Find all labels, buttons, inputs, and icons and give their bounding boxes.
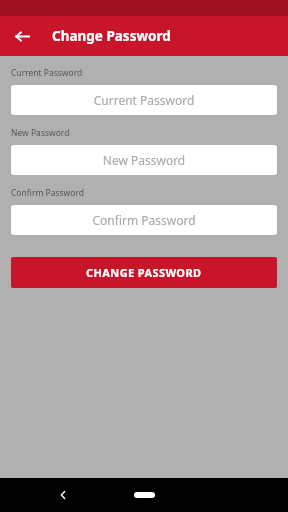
button[interactable]: Back [50,482,76,508]
button[interactable]: Current Password [11,85,277,115]
staticText: Current Password [11,67,83,79]
button[interactable]: CHANGE PASSWORD [11,257,277,288]
staticText: Confirm Password [11,212,277,228]
button[interactable]: New Password [11,145,277,175]
button[interactable]: Home [124,485,164,505]
staticText: Change Password [52,27,171,45]
staticText: Confirm Password [11,187,84,199]
staticText: Current Password [11,92,277,108]
button[interactable]: Back [9,23,35,49]
staticText: CHANGE PASSWORD [86,265,202,280]
button[interactable]: Confirm Password [11,205,277,235]
staticText: New Password [11,152,277,168]
staticText: New Password [11,127,70,139]
